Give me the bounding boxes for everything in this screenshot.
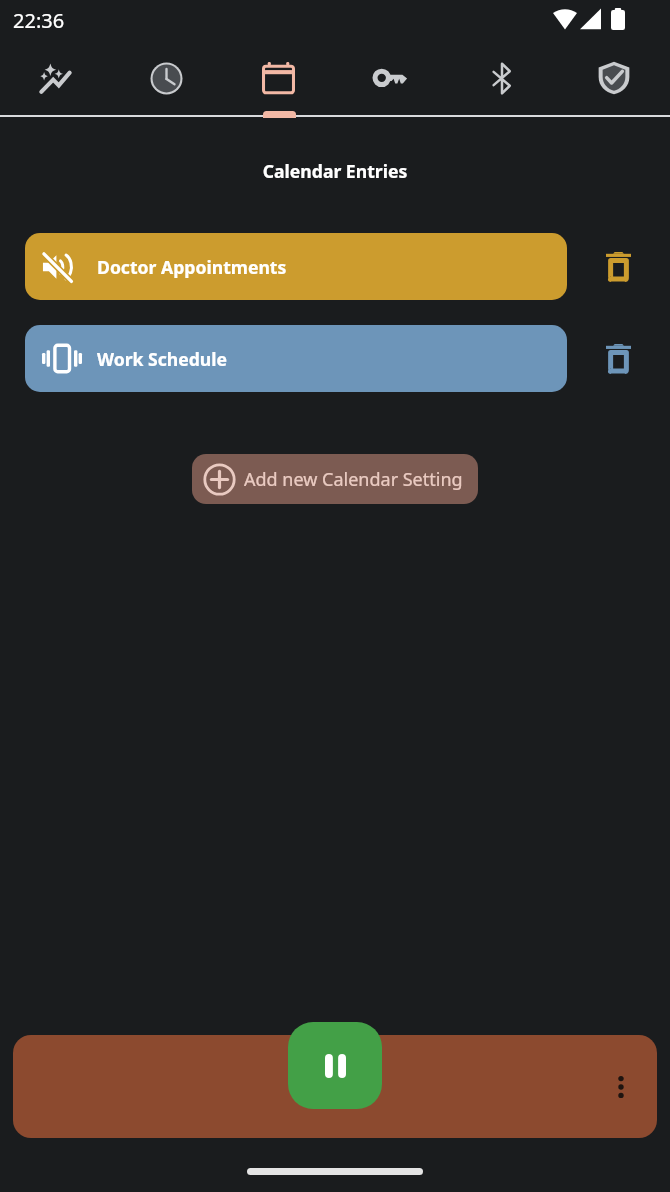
button[interactable]: Passwords xyxy=(334,61,446,95)
button[interactable]: Security xyxy=(558,61,670,95)
button[interactable]: Add new Calendar Setting xyxy=(192,454,478,504)
button[interactable]: Clock xyxy=(111,61,222,95)
button[interactable]: Vibration xyxy=(25,325,567,392)
button[interactable]: Mute notifications xyxy=(25,233,567,300)
button[interactable]: Calendar xyxy=(222,61,334,95)
staticText: Doctor Appointments xyxy=(97,255,287,279)
button[interactable]: More options xyxy=(592,1058,650,1116)
staticText: Work Schedule xyxy=(97,347,228,371)
other: Vibration xyxy=(42,343,82,374)
staticText: 22:36 xyxy=(13,7,65,34)
other: Mute notifications xyxy=(42,251,74,283)
staticText: Calendar Entries xyxy=(0,159,670,183)
button[interactable]: Bluetooth xyxy=(446,61,558,95)
button[interactable]: Magic suggestions xyxy=(0,61,111,95)
button[interactable]: Pause xyxy=(288,1022,382,1109)
button[interactable]: Delete Doctor Appointments xyxy=(585,233,652,300)
button[interactable] xyxy=(13,1035,657,1138)
staticText: Add new Calendar Setting xyxy=(244,467,463,492)
button[interactable]: Delete Work Schedule xyxy=(585,325,652,392)
